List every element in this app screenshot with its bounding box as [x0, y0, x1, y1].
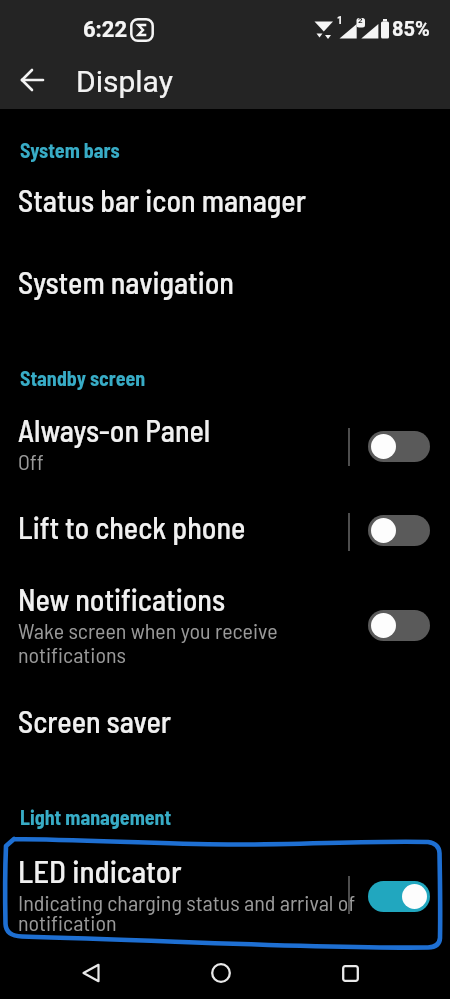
staticText: Off	[18, 448, 44, 474]
staticText: System bars	[20, 138, 120, 162]
staticText: Light management	[20, 805, 172, 829]
staticText: Always-on Panel	[18, 412, 211, 448]
button[interactable]: New notifications	[0, 577, 450, 677]
staticText: LED indicator	[18, 852, 182, 889]
button[interactable]: Always-on Panel	[0, 406, 450, 486]
staticText: notifications	[18, 641, 126, 667]
staticText: Indicating charging status and arrival o…	[18, 889, 356, 915]
staticText: notification	[18, 909, 117, 935]
button[interactable]	[368, 515, 430, 546]
staticText: Wake screen when you receive	[18, 617, 278, 643]
button[interactable]: LED indicator	[0, 846, 450, 946]
button[interactable]: System navigation	[0, 248, 450, 328]
staticText: 6:22	[83, 17, 128, 43]
staticText: New notifications	[18, 581, 226, 617]
button[interactable]	[368, 431, 430, 462]
staticText: 85%	[392, 17, 430, 40]
staticText: 1	[337, 15, 343, 27]
button[interactable]	[368, 881, 430, 912]
button[interactable]	[61, 957, 121, 989]
staticText: System navigation	[18, 264, 234, 300]
button[interactable]	[368, 610, 430, 641]
staticText: Lift to check phone	[18, 509, 246, 545]
button[interactable]: Status bar icon manager	[0, 168, 450, 248]
staticText: Standby screen	[20, 366, 146, 390]
staticText: Display	[76, 64, 173, 99]
button[interactable]	[21, 69, 45, 91]
button[interactable]	[191, 957, 251, 989]
button[interactable]	[320, 957, 380, 989]
button[interactable]: Screen saver	[0, 689, 450, 759]
button[interactable]: Lift to check phone	[0, 497, 450, 565]
staticText: 2	[358, 16, 363, 25]
staticText: Screen saver	[18, 703, 172, 739]
staticText: Status bar icon manager	[18, 182, 306, 218]
